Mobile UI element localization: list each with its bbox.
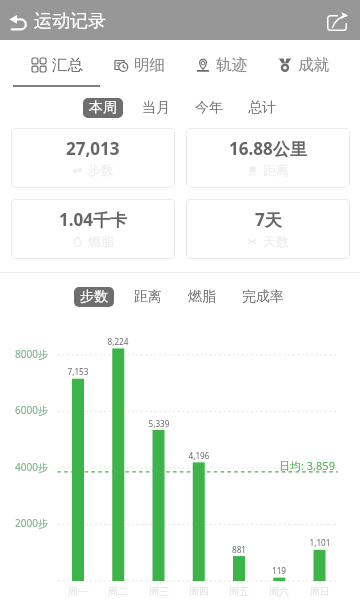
staticText: 天数 <box>263 233 289 249</box>
staticText: 5,339 <box>139 418 179 429</box>
staticText: 881 <box>219 544 259 555</box>
staticText: 周六 <box>259 585 299 598</box>
button[interactable]: 返回 <box>4 8 32 36</box>
staticText: 周五 <box>219 585 259 598</box>
staticText: 日均: 3,859 <box>279 458 335 473</box>
staticText: 周三 <box>139 585 179 598</box>
button[interactable]: 燃脂 <box>182 286 222 308</box>
staticText: 总计 <box>248 99 276 117</box>
staticText: 当月 <box>142 99 170 117</box>
staticText: 16.88公里 <box>229 137 307 160</box>
button[interactable]: 7天 <box>186 199 350 259</box>
button[interactable]: 汇总 <box>16 43 98 87</box>
staticText: 今年 <box>195 99 223 117</box>
button[interactable]: 轨迹 <box>180 43 262 87</box>
button[interactable]: 当月 <box>136 97 176 119</box>
staticText: 周一 <box>58 585 98 598</box>
staticText: 周四 <box>179 585 219 598</box>
staticText: 步数 <box>88 162 114 178</box>
staticText: 2000步 <box>8 516 48 530</box>
button[interactable]: 明细 <box>98 43 180 87</box>
staticText: 4000步 <box>8 460 48 474</box>
button[interactable]: 步数 <box>74 287 114 307</box>
staticText: 明细 <box>134 55 165 75</box>
staticText: 6000步 <box>8 403 48 417</box>
staticText: 完成率 <box>242 288 284 306</box>
button[interactable]: 27,013 <box>11 128 175 188</box>
button[interactable]: 今年 <box>189 97 229 119</box>
button[interactable]: 成就 <box>262 43 344 87</box>
staticText: 1,101 <box>300 537 340 548</box>
staticText: 1.04千卡 <box>59 208 127 231</box>
button[interactable]: 16.88公里 <box>186 128 350 188</box>
staticText: 周二 <box>98 585 138 598</box>
button[interactable]: 总计 <box>242 97 282 119</box>
staticText: 燃脂 <box>88 233 114 249</box>
staticText: 步数 <box>80 288 108 306</box>
staticText: 119 <box>259 565 299 576</box>
staticText: 汇总 <box>52 55 83 75</box>
staticText: 轨迹 <box>216 55 247 75</box>
staticText: 距离 <box>134 288 162 306</box>
staticText: 7天 <box>255 208 282 231</box>
staticText: 周日 <box>300 585 340 598</box>
button[interactable]: 完成率 <box>236 286 290 308</box>
button[interactable]: 本周 <box>83 98 123 118</box>
staticText: 运动记录 <box>34 10 106 33</box>
staticText: 8,224 <box>98 336 138 347</box>
staticText: 27,013 <box>66 137 120 160</box>
staticText: 距离 <box>263 162 289 178</box>
button[interactable]: 分享 <box>323 7 351 35</box>
staticText: 燃脂 <box>188 288 216 306</box>
staticText: 8000步 <box>8 347 48 361</box>
staticText: 本周 <box>89 99 117 117</box>
button[interactable]: 距离 <box>128 286 168 308</box>
staticText: 4,196 <box>179 450 219 461</box>
button[interactable]: 1.04千卡 <box>11 199 175 259</box>
staticText: 成就 <box>298 55 329 75</box>
staticText: 7,153 <box>58 366 98 377</box>
